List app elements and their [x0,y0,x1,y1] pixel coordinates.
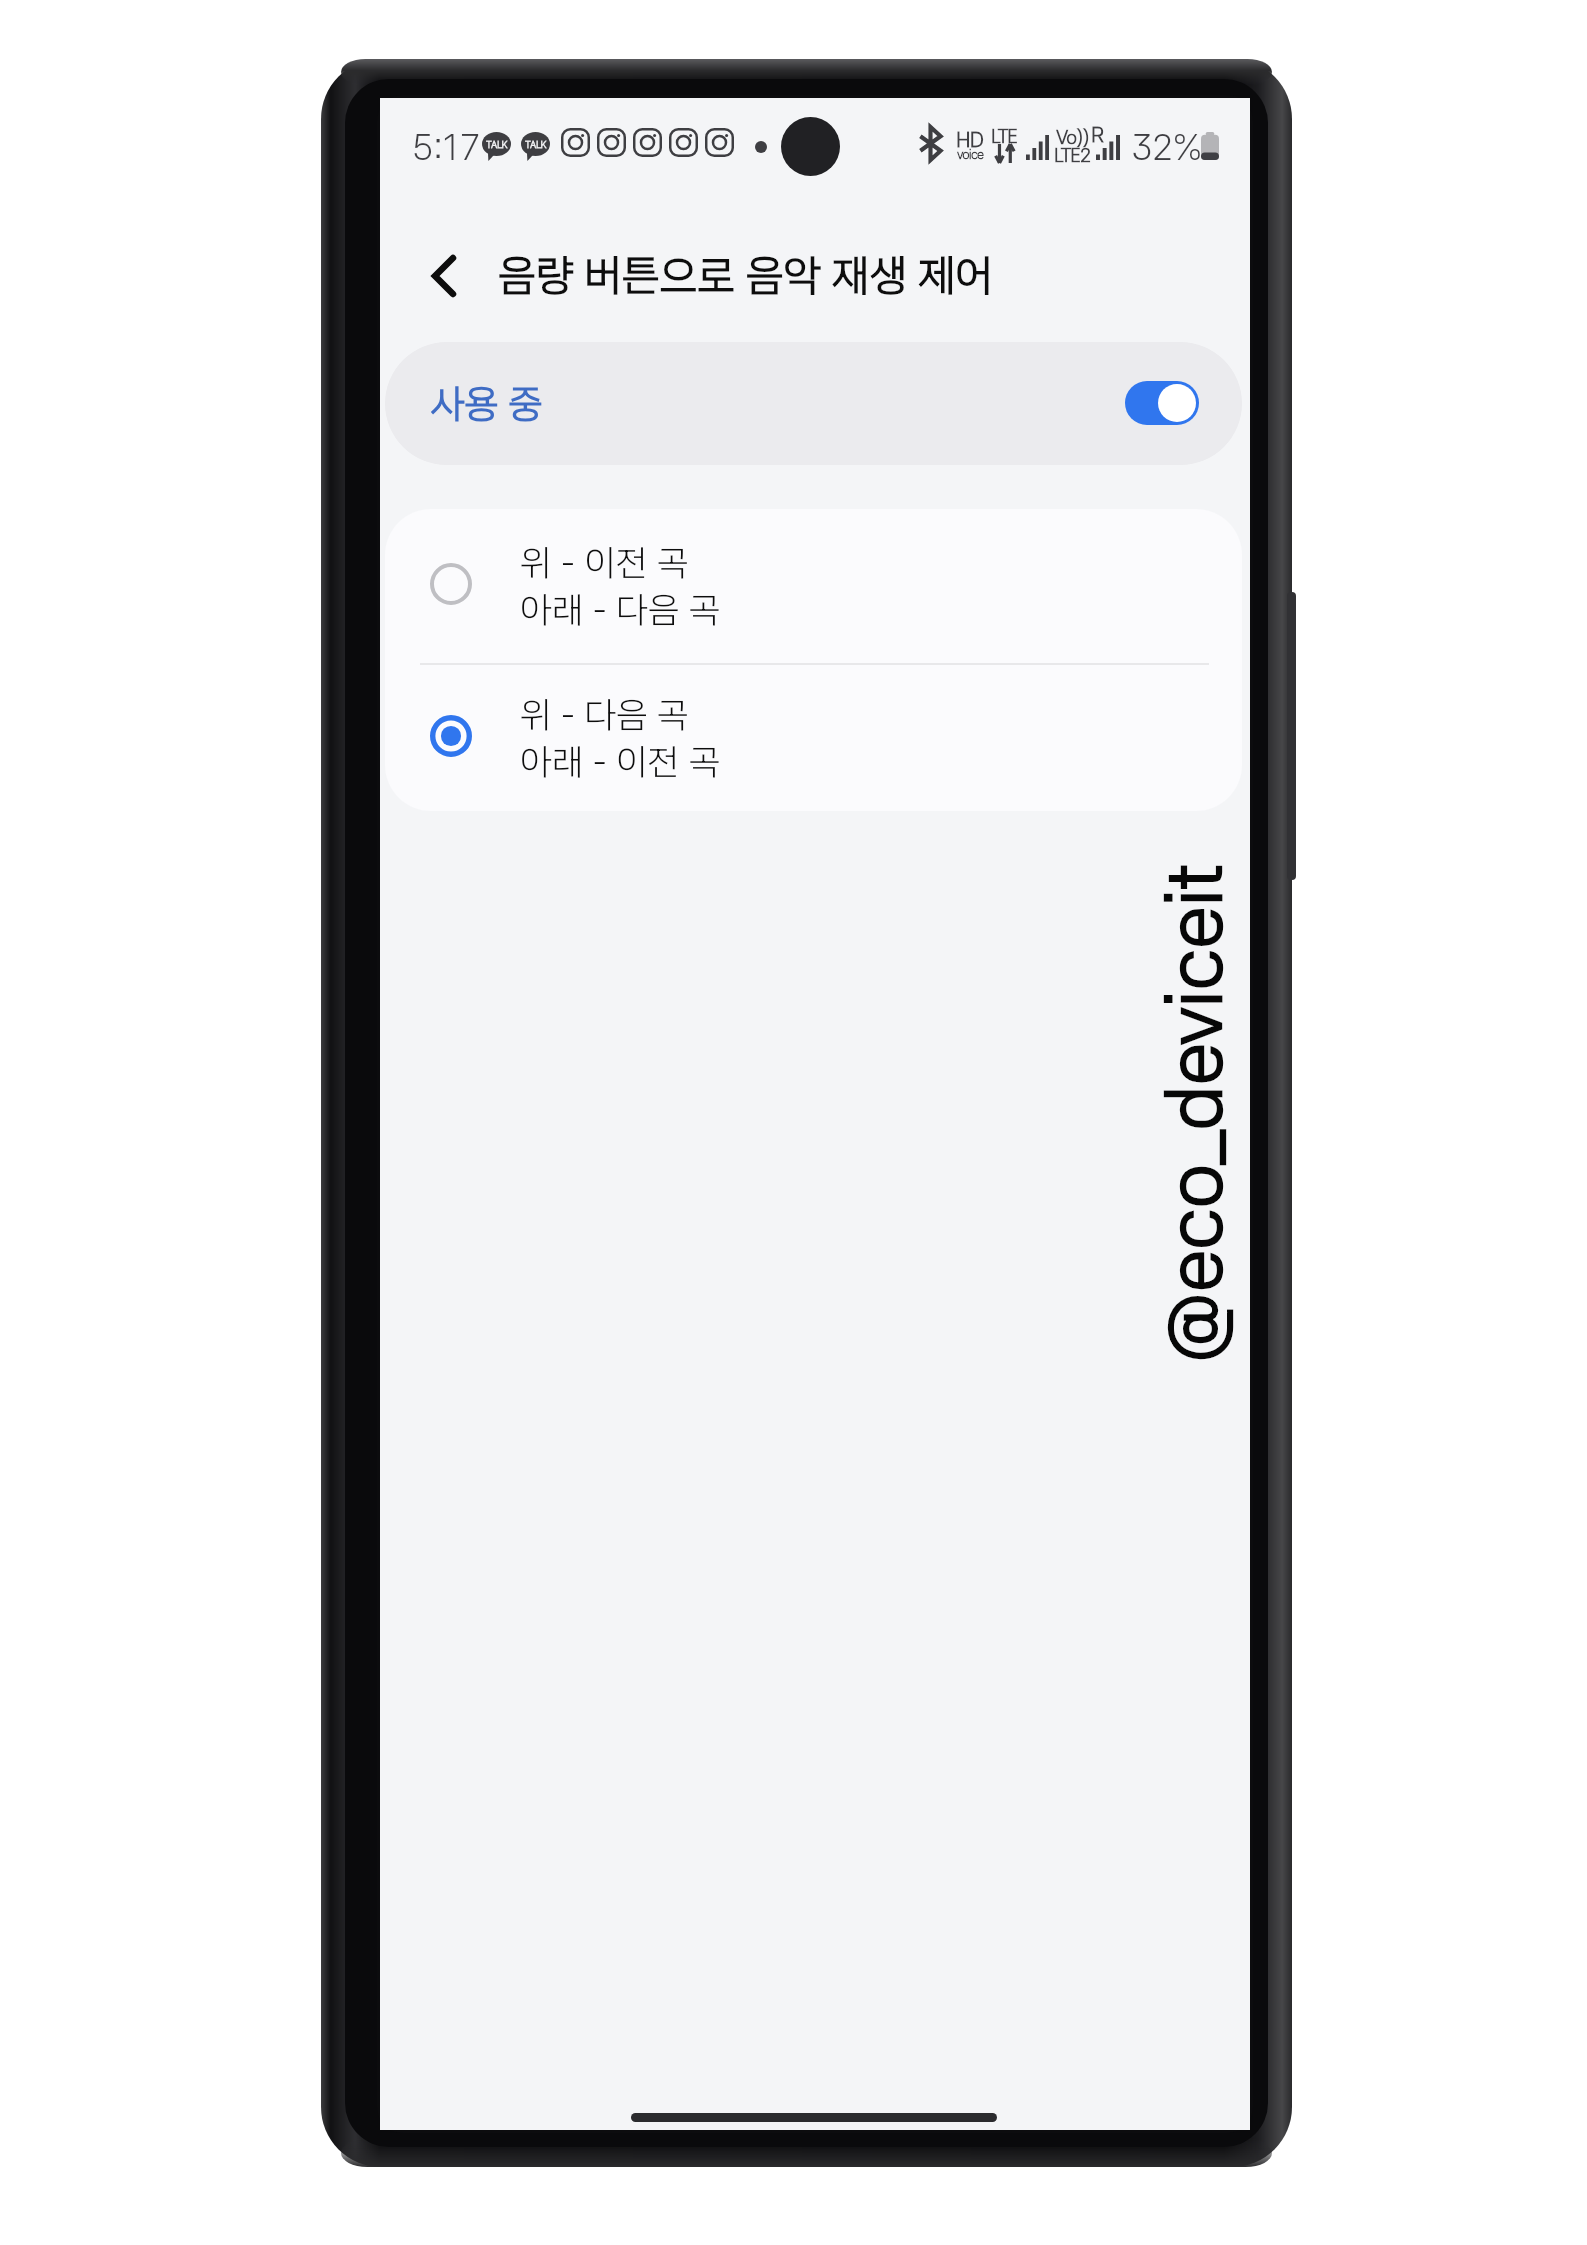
button[interactable]: 위 - 이전 곡 [385,509,1242,659]
staticText: HD [956,127,984,152]
staticText: 음량 버튼으로 음악 재생 제어 [498,249,994,301]
staticText: TALK [486,138,508,150]
staticText: 위 - 이전 곡 [520,541,689,585]
staticText: 32% [1131,126,1203,169]
button[interactable]: 위 - 다음 곡 [385,661,1242,811]
staticText: Vo)) [1056,126,1089,149]
button[interactable]: 사용 중 [385,342,1242,465]
staticText: 아래 - 이전 곡 [520,740,721,784]
staticText: 아래 - 다음 곡 [520,588,721,632]
staticText: @eco_deviceit [1147,864,1240,1363]
staticText: R [1091,122,1104,147]
staticText: voice [957,147,984,163]
staticText: LTE [991,125,1018,148]
staticText: 5:17 [412,126,480,169]
staticText: 사용 중 [430,380,543,428]
staticText: LTE2 [1054,144,1090,167]
staticText: TALK [525,138,547,150]
button[interactable]: Turn off volume key music control [1125,381,1199,425]
staticText: 위 - 다음 곡 [520,693,689,737]
button[interactable]: Back [405,237,483,315]
